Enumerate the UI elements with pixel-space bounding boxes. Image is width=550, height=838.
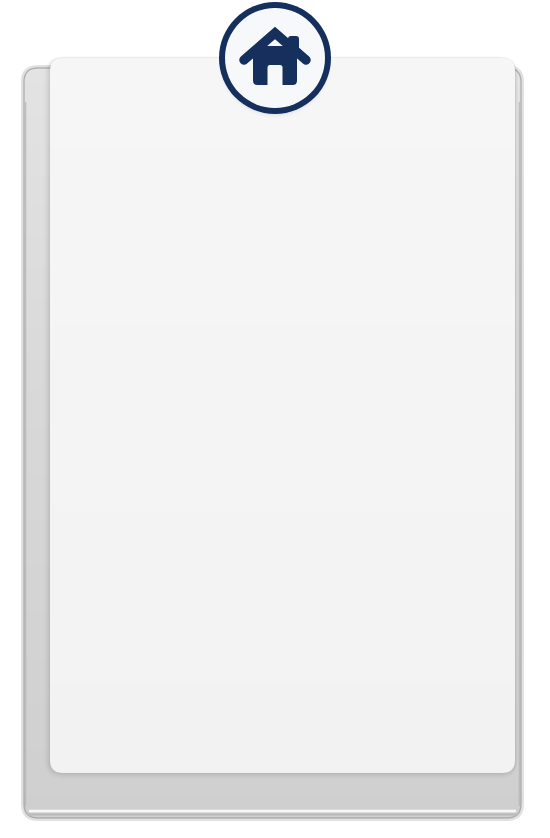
button[interactable]: Home [219, 2, 331, 114]
